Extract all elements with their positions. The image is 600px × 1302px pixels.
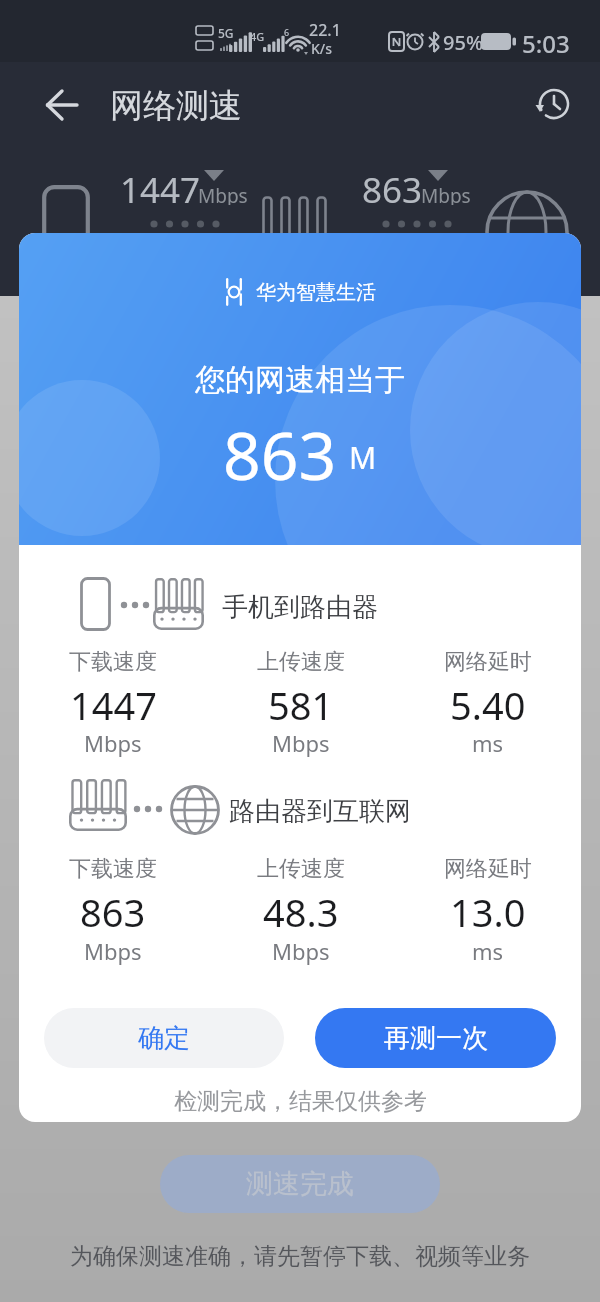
staticText: 863	[223, 409, 337, 489]
staticText: 上传速度	[257, 855, 345, 883]
staticText: 1447	[120, 166, 201, 208]
staticText: Mbps	[198, 183, 248, 205]
staticText: 路由器到互联网	[229, 795, 411, 828]
button[interactable]: 再测一次	[315, 1008, 556, 1068]
staticText: 863	[80, 886, 146, 938]
button[interactable]: 确定	[44, 1008, 284, 1068]
staticText: 4G	[250, 29, 265, 44]
staticText: 网络延时	[444, 855, 532, 883]
staticText: 5:03	[522, 27, 570, 60]
staticText: ms	[472, 728, 504, 758]
button[interactable]	[526, 76, 582, 132]
staticText: Mbps	[84, 728, 142, 758]
staticText: M	[349, 437, 377, 478]
staticText: 您的网速相当于	[195, 361, 405, 397]
staticText: 95%	[443, 29, 483, 56]
staticText: 华为智慧生活	[256, 280, 376, 305]
staticText: 863	[362, 166, 423, 208]
staticText: Mbps	[272, 728, 330, 758]
staticText: 网络延时	[444, 648, 532, 676]
staticText: 为确保测速准确，请先暂停下载、视频等业务	[70, 1242, 530, 1270]
staticText: 测速完成	[246, 1167, 354, 1201]
staticText: 网络测速	[110, 85, 242, 127]
staticText: 上传速度	[257, 648, 345, 676]
staticText: 检测完成，结果仅供参考	[174, 1087, 427, 1115]
staticText: 确定	[138, 1022, 190, 1055]
staticText: 48.3	[263, 886, 339, 938]
button[interactable]	[33, 76, 89, 132]
staticText: Mbps	[84, 936, 142, 966]
staticText: K/s	[311, 39, 333, 58]
staticText: Mbps	[421, 183, 471, 205]
staticText: 581	[268, 679, 334, 731]
button[interactable]: 测速完成	[160, 1155, 440, 1213]
staticText: 5G	[218, 25, 234, 41]
staticText: 22.1	[309, 19, 341, 41]
staticText: Mbps	[272, 936, 330, 966]
staticText: 再测一次	[384, 1022, 488, 1055]
staticText: 5.40	[450, 679, 526, 731]
staticText: 下载速度	[69, 855, 157, 883]
staticText: 下载速度	[69, 648, 157, 676]
staticText: 13.0	[450, 886, 526, 938]
staticText: 6	[284, 26, 290, 38]
staticText: ms	[472, 936, 504, 966]
staticText: 手机到路由器	[222, 591, 378, 624]
staticText: 1447	[70, 679, 157, 731]
